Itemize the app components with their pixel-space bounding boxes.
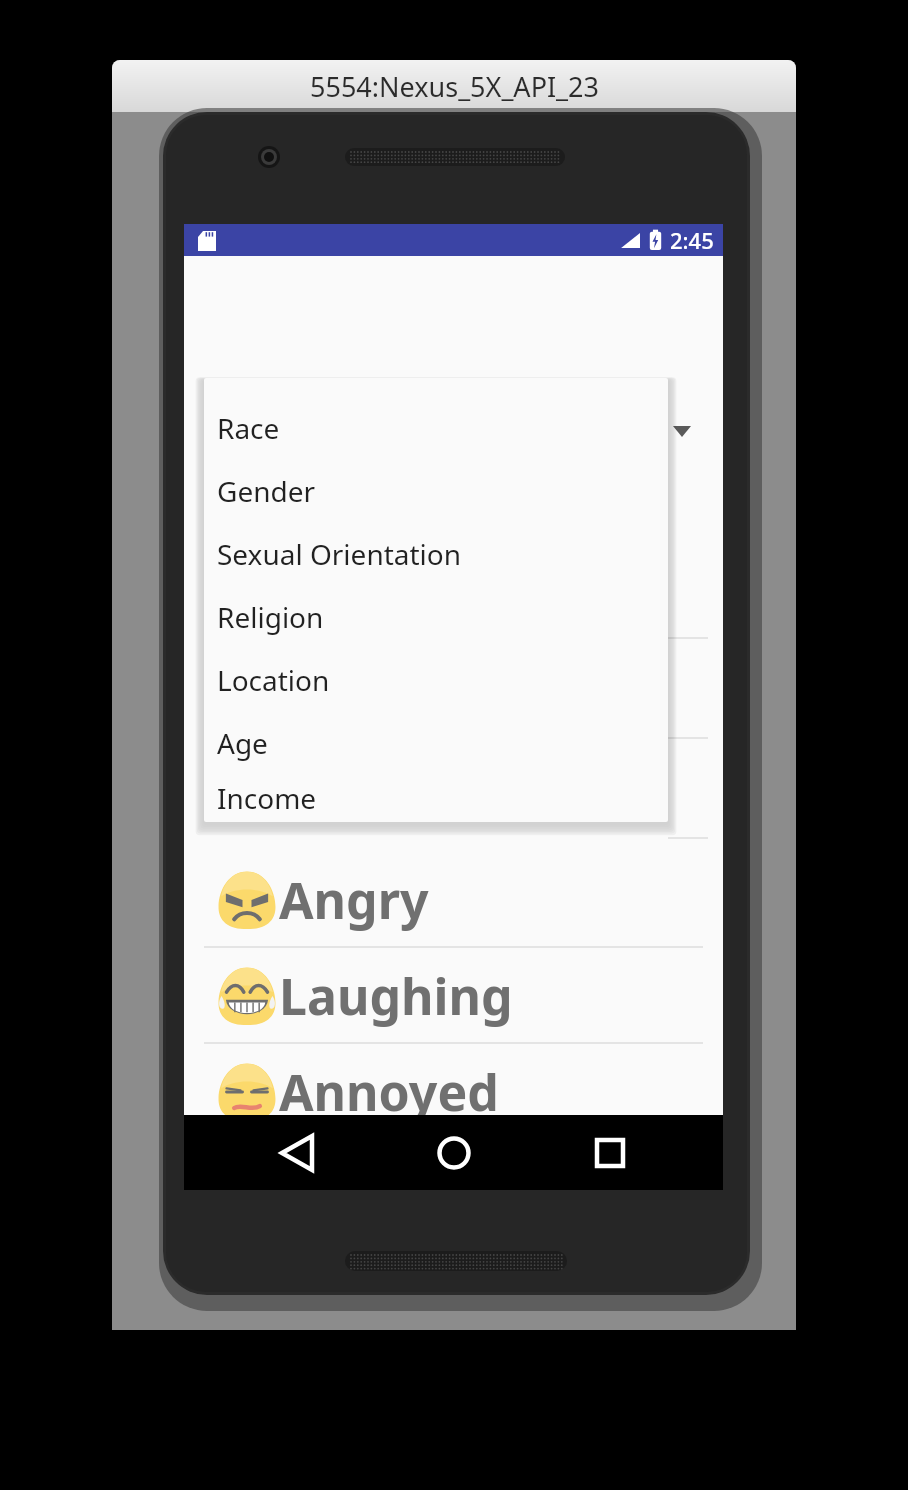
- button[interactable]: Open category spinner: [662, 414, 702, 448]
- button[interactable]: Home: [411, 1115, 497, 1190]
- staticText: Annoyed: [279, 1058, 499, 1126]
- button[interactable]: Age: [204, 711, 668, 774]
- staticText: Sexual Orientation: [217, 535, 462, 573]
- button[interactable]: Race: [204, 396, 668, 459]
- staticText: Laughing: [279, 962, 513, 1030]
- staticText: Religion: [217, 598, 324, 636]
- button[interactable]: Gender: [204, 459, 668, 522]
- button[interactable]: Angry: [184, 852, 723, 948]
- button[interactable]: Back: [254, 1115, 340, 1190]
- staticText: Gender: [217, 472, 316, 510]
- staticText: Age: [217, 724, 268, 762]
- button[interactable]: Recent apps: [567, 1115, 653, 1190]
- staticText: 5554:Nexus_5X_API_23: [310, 68, 599, 105]
- staticText: Angry: [279, 866, 429, 934]
- staticText: Location: [217, 661, 330, 699]
- button[interactable]: Religion: [204, 585, 668, 648]
- staticText: Income: [217, 779, 317, 817]
- button[interactable]: Income: [204, 774, 668, 822]
- staticText: 2:45: [670, 225, 714, 255]
- button[interactable]: Sexual Orientation: [204, 522, 668, 585]
- button[interactable]: Annoyed: [184, 1044, 723, 1140]
- staticText: Race: [217, 409, 280, 447]
- button[interactable]: Laughing: [184, 948, 723, 1044]
- button[interactable]: Location: [204, 648, 668, 711]
